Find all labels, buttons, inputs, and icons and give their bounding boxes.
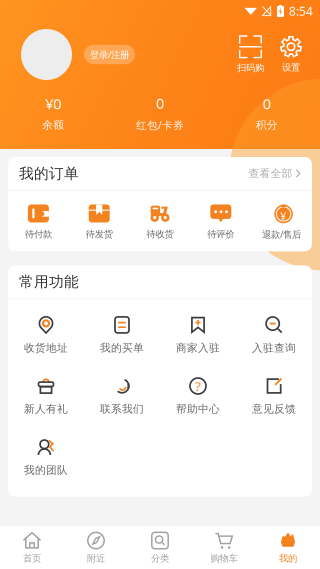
staticText: 登录/注册 [90, 48, 129, 61]
button[interactable]: 我的 [256, 531, 320, 564]
button[interactable]: 商家入驻 [160, 316, 236, 354]
staticText: 余额 [42, 118, 64, 131]
staticText: 扫码购 [237, 62, 264, 74]
staticText: 待评价 [207, 228, 234, 240]
button[interactable]: 入驻查询 [236, 316, 312, 354]
button[interactable]: 新人有礼 [8, 377, 84, 416]
staticText: 我的订单 [19, 164, 79, 182]
staticText: 首页 [23, 552, 41, 564]
staticText: 我的买单 [100, 341, 144, 354]
staticText: 附近 [87, 552, 105, 564]
staticText: 入驻查询 [252, 341, 296, 354]
staticText: 我的 [279, 552, 297, 564]
button[interactable]: 联系我们 [84, 377, 160, 416]
button[interactable]: 待发货 [69, 204, 130, 240]
button[interactable]: ? [160, 377, 236, 416]
staticText: 帮助中心 [176, 402, 220, 416]
staticText: 8:54 [289, 3, 313, 19]
staticText: 0 [263, 94, 271, 113]
staticText: 待收货 [146, 228, 173, 240]
button[interactable]: 我的团队 [8, 439, 84, 477]
button[interactable]: 待付款 [8, 204, 69, 240]
staticText: 积分 [256, 118, 278, 131]
staticText: 待付款 [25, 228, 52, 240]
staticText: 我的团队 [24, 464, 68, 477]
staticText: 商家入驻 [176, 341, 220, 354]
staticText: 0 [156, 93, 164, 113]
staticText: ¥ [280, 209, 286, 223]
button[interactable]: 附近 [64, 531, 128, 564]
button[interactable]: 扫码购 [237, 35, 264, 74]
button[interactable]: ¥ [251, 204, 312, 240]
staticText: ¥0 [45, 94, 61, 113]
staticText: 收货地址 [24, 341, 68, 354]
button[interactable]: 意见反馈 [236, 377, 312, 416]
staticText: 红包/卡券 [136, 118, 184, 132]
button[interactable]: 首页 [0, 531, 64, 564]
button[interactable]: 设置 [280, 36, 302, 73]
staticText: 待发货 [86, 228, 113, 240]
staticText: 联系我们 [100, 402, 144, 416]
staticText: 购物车 [210, 552, 237, 564]
staticText: 新人有礼 [24, 402, 68, 416]
staticText: ? [195, 377, 201, 395]
staticText: 意见反馈 [252, 402, 296, 416]
staticText: 设置 [282, 62, 300, 73]
button[interactable]: 待评价 [190, 204, 251, 240]
button[interactable]: 待收货 [130, 204, 190, 240]
button[interactable]: 登录/注册 [84, 45, 135, 64]
staticText: 分类 [151, 552, 169, 564]
button[interactable]: 查看全部 [248, 167, 301, 180]
button[interactable]: 购物车 [192, 531, 256, 564]
button[interactable]: 我的买单 [84, 316, 160, 354]
staticText: 退款/售后 [262, 228, 301, 240]
staticText: 常用功能 [19, 273, 79, 291]
staticText: 查看全部 [248, 167, 292, 180]
button[interactable]: 分类 [128, 531, 192, 564]
button[interactable]: 收货地址 [8, 316, 84, 354]
